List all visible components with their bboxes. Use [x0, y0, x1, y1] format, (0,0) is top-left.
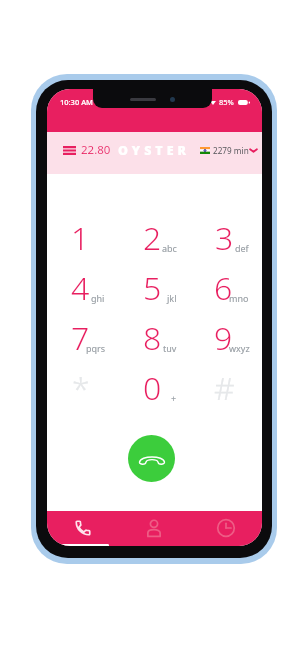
- button[interactable]: 0: [118, 363, 190, 413]
- staticText: +: [171, 392, 177, 404]
- button[interactable]: Recents: [190, 511, 262, 546]
- staticText: ghi: [91, 292, 105, 304]
- button[interactable]: 5: [118, 263, 190, 313]
- staticText: 3: [215, 216, 234, 260]
- staticText: 1: [71, 216, 90, 260]
- staticText: pqrs: [86, 342, 106, 354]
- staticText: wxyz: [229, 342, 250, 354]
- button[interactable]: 4: [47, 263, 118, 313]
- staticText: tuv: [163, 342, 177, 354]
- button[interactable]: 1: [47, 213, 118, 263]
- staticText: *: [72, 366, 90, 410]
- button[interactable]: 7: [47, 313, 118, 363]
- staticText: 7: [71, 316, 90, 360]
- button[interactable]: Select country: [200, 129, 258, 171]
- button[interactable]: Dialer: [47, 511, 118, 546]
- staticText: 4: [71, 266, 90, 310]
- staticText: mno: [229, 292, 249, 304]
- button[interactable]: *: [47, 363, 118, 413]
- staticText: 85%: [219, 97, 234, 107]
- button[interactable]: 9: [190, 313, 262, 363]
- staticText: 6: [214, 266, 233, 310]
- staticText: 2: [143, 216, 162, 260]
- button[interactable]: 6: [190, 263, 262, 313]
- button[interactable]: 2: [118, 213, 190, 263]
- staticText: 2279 min: [213, 145, 249, 156]
- button[interactable]: #: [190, 363, 262, 413]
- staticText: jkl: [167, 292, 177, 304]
- staticText: 10:30 AM: [60, 97, 93, 107]
- button[interactable]: Contacts: [118, 511, 190, 546]
- staticText: OYSTER: [118, 142, 191, 159]
- staticText: 8: [143, 316, 162, 360]
- button[interactable]: 3: [190, 213, 262, 263]
- staticText: #: [214, 366, 235, 410]
- staticText: 0: [143, 366, 162, 410]
- staticText: 22.80: [81, 142, 111, 158]
- button[interactable]: Balance menu: [63, 129, 111, 171]
- staticText: 9: [214, 316, 233, 360]
- staticText: 5: [143, 266, 162, 310]
- staticText: abc: [162, 242, 177, 254]
- button[interactable]: Call: [128, 435, 175, 482]
- button[interactable]: 8: [118, 313, 190, 363]
- staticText: def: [235, 242, 249, 254]
